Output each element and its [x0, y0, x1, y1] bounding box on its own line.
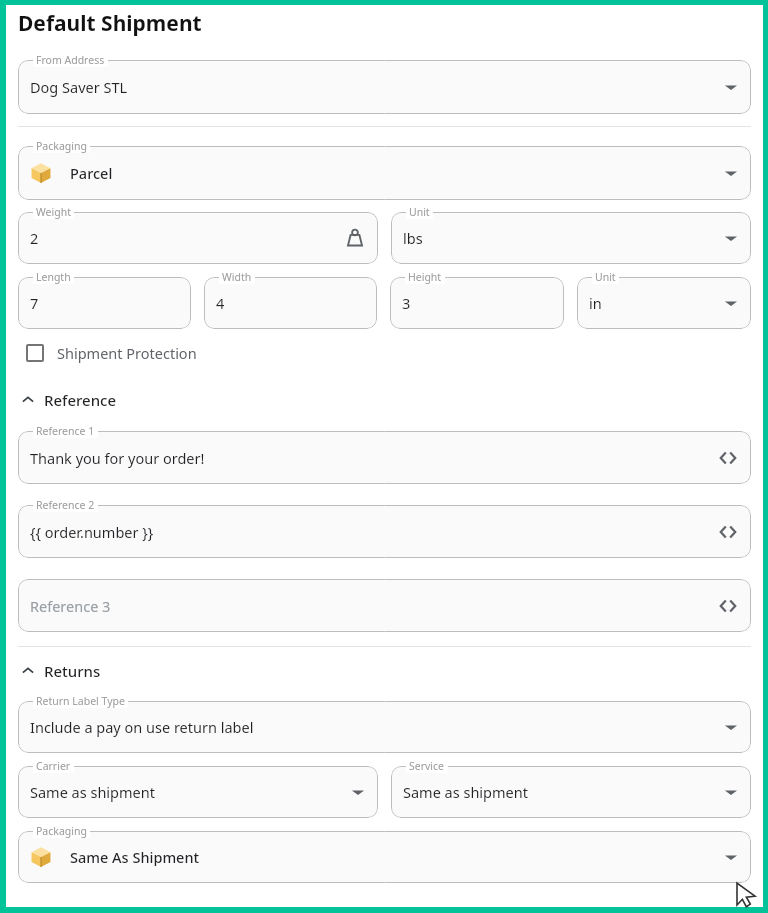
- button[interactable]: 2: [18, 212, 378, 264]
- button[interactable]: Same As Shipment: [18, 831, 751, 883]
- staticText: Default Shipment: [18, 9, 202, 38]
- staticText: 3: [402, 293, 552, 313]
- staticText: Return Label Type: [36, 694, 125, 708]
- staticText: Reference 2: [36, 498, 95, 512]
- staticText: From Address: [36, 53, 105, 67]
- staticText: Length: [36, 270, 71, 284]
- staticText: Parcel: [70, 163, 723, 183]
- button[interactable]: Reference: [6, 388, 763, 412]
- staticText: Thank you for your order!: [30, 448, 717, 468]
- staticText: Weight: [36, 205, 71, 219]
- staticText: Same As Shipment: [70, 847, 723, 867]
- staticText: Include a pay on use return label: [30, 717, 723, 737]
- button[interactable]: lbs: [391, 212, 751, 264]
- staticText: Reference 3: [30, 596, 717, 616]
- button[interactable]: Returns: [6, 659, 763, 683]
- button[interactable]: 4: [204, 277, 377, 329]
- staticText: Packaging: [36, 139, 87, 153]
- button[interactable]: Reference 3: [18, 579, 751, 632]
- staticText: Reference: [44, 390, 117, 410]
- staticText: Same as shipment: [403, 782, 723, 802]
- staticText: {{ order.number }}: [30, 522, 717, 542]
- button[interactable]: 7: [18, 277, 191, 329]
- button[interactable]: Thank you for your order!: [18, 431, 751, 484]
- button[interactable]: {{ order.number }}: [18, 505, 751, 558]
- staticText: 4: [216, 293, 365, 313]
- button[interactable]: Parcel: [18, 146, 751, 200]
- button[interactable]: Shipment Protection: [6, 340, 763, 366]
- staticText: 7: [30, 293, 179, 313]
- button[interactable]: Same as shipment: [391, 766, 751, 818]
- button[interactable]: Dog Saver STL: [18, 60, 751, 114]
- staticText: Unit: [409, 205, 430, 219]
- staticText: Dog Saver STL: [30, 77, 723, 97]
- staticText: Width: [222, 270, 252, 284]
- staticText: Same as shipment: [30, 782, 350, 802]
- staticText: Carrier: [36, 759, 71, 773]
- staticText: Service: [409, 759, 445, 773]
- staticText: Unit: [595, 270, 616, 284]
- button[interactable]: Same as shipment: [18, 766, 378, 818]
- button[interactable]: Include a pay on use return label: [18, 701, 751, 753]
- staticText: Returns: [44, 661, 101, 681]
- button[interactable]: 3: [390, 277, 564, 329]
- staticText: Reference 1: [36, 424, 95, 438]
- staticText: in: [589, 293, 723, 313]
- button[interactable]: in: [577, 277, 751, 329]
- staticText: Packaging: [36, 824, 87, 838]
- staticText: 2: [30, 228, 344, 248]
- button[interactable]: Use Unverified Address (USPS Only): [6, 901, 763, 907]
- staticText: Shipment Protection: [57, 343, 197, 363]
- staticText: lbs: [403, 228, 723, 248]
- staticText: Height: [408, 270, 442, 284]
